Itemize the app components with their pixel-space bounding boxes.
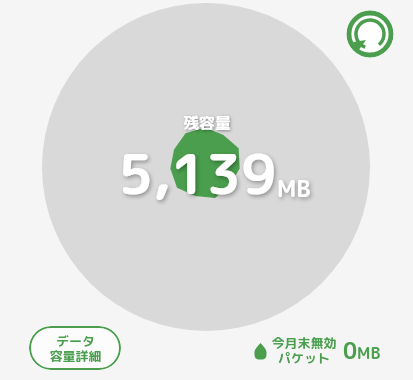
staticText: MB [277,172,311,204]
staticText: データ 容量詳細 [49,332,102,365]
staticText: 0MB [343,335,381,366]
button[interactable]: Refresh [346,10,394,58]
button[interactable]: 今月末無効 パケット [254,334,381,367]
staticText: 今月末無効 パケット [271,334,337,367]
button[interactable]: データ 容量詳細 [29,326,121,370]
staticText: 残容量 [183,112,232,134]
staticText: 5,139 [118,135,277,212]
